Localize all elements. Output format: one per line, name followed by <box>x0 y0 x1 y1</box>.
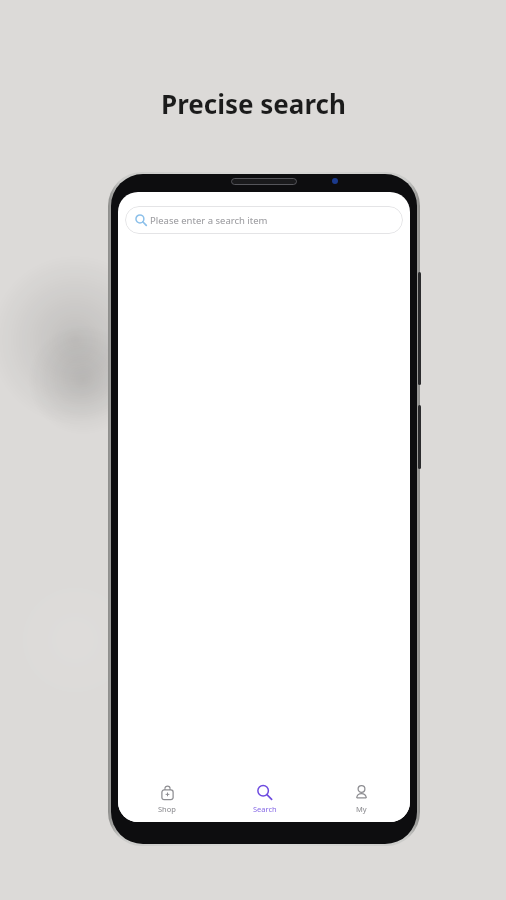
button[interactable]: Search <box>216 780 313 818</box>
staticText: Please enter a search item <box>150 214 268 227</box>
staticText: Search <box>253 804 277 814</box>
staticText: Precise search <box>161 86 346 121</box>
button[interactable]: Please enter a search item <box>125 206 403 234</box>
staticText: Shop <box>158 804 176 814</box>
button[interactable]: Shop <box>118 780 216 818</box>
other: Search <box>256 784 273 801</box>
button[interactable]: My profile <box>313 780 410 818</box>
other: Shop <box>159 784 176 801</box>
staticText: My <box>356 804 367 814</box>
other: My profile <box>353 784 370 801</box>
